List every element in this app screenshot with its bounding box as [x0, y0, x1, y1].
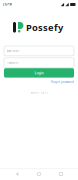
staticText: Staff code	[7, 49, 19, 53]
button[interactable]: Login	[4, 68, 74, 78]
staticText: version 1.4.7.9	[30, 91, 47, 94]
button[interactable]: Password	[4, 58, 74, 68]
staticText: Login	[34, 70, 43, 75]
staticText: 5:15 PM	[2, 3, 11, 6]
button[interactable]: Staff code	[4, 46, 74, 56]
button[interactable]: Home	[28, 168, 50, 180]
button[interactable]: Recent apps	[50, 168, 72, 180]
staticText: Password	[7, 61, 19, 64]
staticText: Forgot password	[51, 80, 74, 84]
staticText: Possefy	[26, 21, 63, 34]
button[interactable]: Forgot password	[4, 80, 74, 84]
button[interactable]: Back	[6, 168, 28, 180]
